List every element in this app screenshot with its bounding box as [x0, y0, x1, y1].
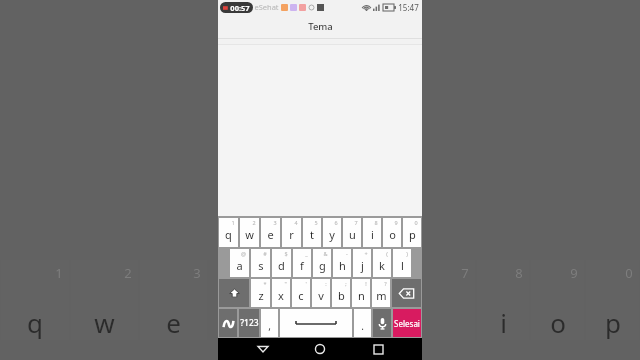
staticText: 3 — [193, 264, 201, 282]
staticText: 00:57 — [230, 3, 250, 13]
staticText: e — [166, 305, 181, 340]
button[interactable]: ' — [292, 279, 310, 307]
button[interactable]: ! — [352, 279, 370, 307]
staticText: Selesai — [394, 318, 420, 329]
button[interactable]: 6 — [323, 218, 341, 247]
button[interactable]: _ — [293, 249, 311, 277]
staticText: ? — [384, 280, 387, 287]
staticText: 0 — [625, 264, 633, 282]
staticText: 8 — [374, 219, 378, 226]
staticText: ! — [365, 280, 367, 287]
staticText: z — [258, 288, 264, 303]
staticText: * — [263, 280, 267, 287]
staticText: @ — [241, 250, 246, 257]
button[interactable]: ; — [332, 279, 350, 307]
button[interactable]: . — [354, 309, 371, 337]
button[interactable]: 9 — [383, 218, 401, 247]
staticText: 1 — [55, 264, 63, 282]
button[interactable]: : — [312, 279, 330, 307]
staticText: 4 — [294, 219, 298, 226]
button[interactable]: 0 — [403, 218, 421, 247]
staticText: f — [300, 258, 304, 273]
button[interactable]: $ — [272, 249, 291, 277]
button[interactable]: ? — [372, 279, 390, 307]
staticText: ; — [345, 280, 347, 287]
staticText: ) — [406, 250, 408, 257]
button[interactable]: - — [333, 249, 351, 277]
button[interactable]: * — [251, 279, 270, 307]
button[interactable]: Recents — [365, 338, 391, 360]
button[interactable]: @ — [230, 249, 249, 277]
staticText: u — [349, 227, 356, 242]
button[interactable]: Backspace — [392, 279, 421, 307]
button[interactable]: , — [261, 309, 278, 337]
staticText: a — [236, 258, 243, 273]
button[interactable]: Selesai — [393, 309, 421, 337]
staticText: i — [371, 227, 374, 242]
staticText: h — [339, 258, 346, 273]
staticText: 6 — [334, 219, 338, 226]
staticText: ?123 — [240, 317, 259, 329]
staticText: 0 — [414, 219, 418, 226]
button[interactable]: " — [272, 279, 290, 307]
staticText: 2 — [252, 219, 256, 226]
staticText: o — [389, 227, 396, 242]
staticText: 7 — [354, 219, 358, 226]
staticText: y — [329, 227, 335, 242]
staticText: j — [361, 258, 364, 273]
staticText: $ — [284, 250, 288, 257]
staticText: 9 — [394, 219, 398, 226]
button[interactable]: Emoji — [219, 309, 237, 337]
button[interactable]: 7 — [343, 218, 361, 247]
button[interactable]: ( — [373, 249, 391, 277]
button[interactable]: Shift — [219, 279, 249, 307]
staticText: n — [358, 288, 365, 303]
staticText: i — [500, 305, 507, 340]
button[interactable]: ) — [393, 249, 411, 277]
staticText: t — [310, 227, 314, 242]
button[interactable]: Back — [250, 338, 276, 360]
staticText: k — [379, 258, 385, 273]
staticText: r — [289, 227, 294, 242]
staticText: w — [245, 227, 254, 242]
button[interactable]: 3 — [261, 218, 280, 247]
button[interactable]: Home — [307, 338, 333, 360]
staticText: l — [401, 258, 404, 273]
staticText: c — [298, 288, 304, 303]
staticText: o — [550, 305, 566, 340]
button[interactable]: Voice input — [373, 309, 391, 337]
button[interactable]: & — [313, 249, 331, 277]
staticText: 2 — [124, 264, 132, 282]
staticText: 15:47 — [398, 2, 419, 13]
staticText: _ — [305, 250, 308, 257]
staticText: . — [361, 319, 364, 333]
staticText: 1 — [231, 219, 235, 226]
staticText: m — [376, 288, 387, 303]
button[interactable]: 5 — [303, 218, 321, 247]
staticText: " — [284, 280, 287, 287]
staticText: b — [338, 288, 345, 303]
button[interactable]: Space — [280, 309, 352, 337]
staticText: s — [258, 258, 264, 273]
button[interactable]: 1 — [219, 218, 238, 247]
staticText: 3 — [273, 219, 277, 226]
staticText: p — [409, 227, 416, 242]
staticText: v — [318, 288, 324, 303]
staticText: p — [605, 305, 621, 340]
staticText: 9 — [570, 264, 578, 282]
button[interactable]: 4 — [282, 218, 301, 247]
button[interactable]: ?123 — [239, 309, 259, 337]
button[interactable]: 8 — [363, 218, 381, 247]
staticText: ( — [386, 250, 388, 257]
button[interactable]: # — [251, 249, 270, 277]
staticText: q — [27, 305, 43, 340]
staticText: x — [278, 288, 284, 303]
staticText: eSehat — [254, 2, 279, 12]
staticText: 8 — [515, 264, 523, 282]
staticText: Tema — [308, 20, 333, 33]
button[interactable]: + — [353, 249, 371, 277]
staticText: d — [278, 258, 285, 273]
button[interactable]: 2 — [240, 218, 259, 247]
staticText: + — [364, 250, 368, 257]
staticText: ' — [305, 280, 307, 287]
